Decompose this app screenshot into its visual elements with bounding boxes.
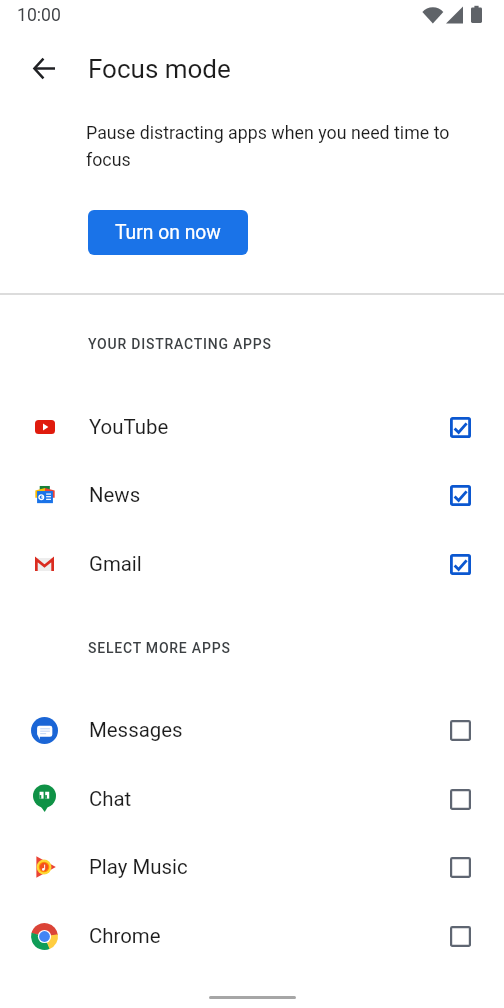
staticText: Chrome: [89, 924, 161, 948]
staticText: SELECT MORE APPS: [88, 640, 231, 656]
button[interactable]: Back: [20, 44, 68, 92]
staticText: Pause distracting apps when you need tim…: [86, 122, 464, 171]
staticText: Focus mode: [88, 54, 231, 84]
button[interactable]: News: [0, 461, 504, 529]
staticText: 10:00: [17, 5, 61, 26]
button[interactable]: Gmail: [0, 530, 504, 598]
button[interactable]: YouTube: [0, 393, 504, 461]
staticText: Play Music: [89, 855, 188, 879]
button[interactable]: Messages: [0, 696, 504, 764]
staticText: YOUR DISTRACTING APPS: [88, 336, 272, 352]
staticText: News: [89, 483, 141, 507]
button[interactable]: Chrome: [0, 902, 504, 970]
button[interactable]: Chat: [0, 765, 504, 833]
staticText: YouTube: [89, 415, 169, 439]
staticText: Turn on now: [115, 221, 221, 244]
staticText: Chat: [89, 787, 132, 811]
staticText: Messages: [89, 718, 183, 742]
staticText: Gmail: [89, 552, 142, 576]
button[interactable]: Turn on now: [88, 210, 248, 255]
button[interactable]: Play Music: [0, 833, 504, 901]
